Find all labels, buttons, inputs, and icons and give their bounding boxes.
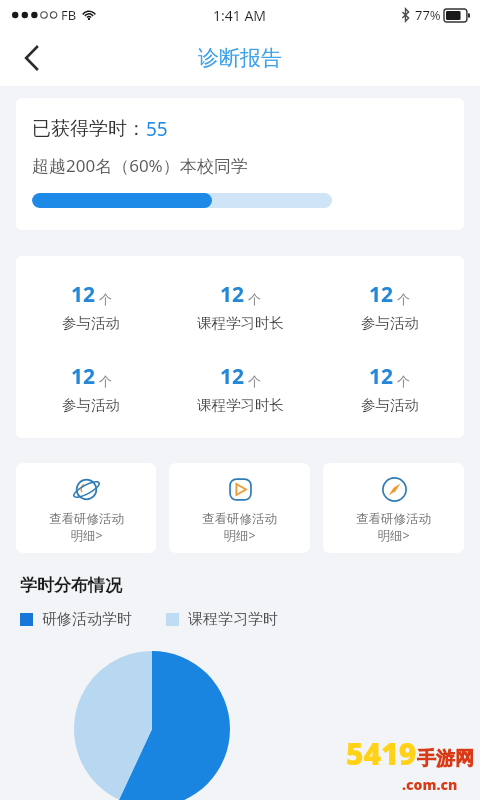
staticText: 查看研修活动 明细> [202,511,277,543]
staticText: 55 [146,116,168,142]
staticText: 5419 [346,733,417,774]
staticText: 12 [71,280,96,309]
other: 课程学习 [226,475,255,504]
staticText: 研修活动学时 [42,610,132,629]
staticText: 查看研修活动 明细> [49,511,124,543]
button[interactable]: 12 [166,362,315,414]
button[interactable]: 课程学习 [169,463,310,553]
staticText: 参与活动 [361,314,419,332]
staticText: 个 [99,373,112,389]
button[interactable]: 12 [16,280,166,332]
button[interactable]: 12 [315,280,464,332]
button[interactable]: 已获得学时： [16,98,464,230]
button[interactable]: 研修活动 [16,463,156,553]
staticText: 12 [369,280,394,309]
staticText: 课程学习时长 [197,314,284,332]
staticText: FB [61,6,77,24]
button[interactable]: 12 [166,280,315,332]
staticText: 参与活动 [62,314,120,332]
button[interactable]: Back [10,36,54,80]
staticText: 个 [397,373,410,389]
staticText: 1:41 AM [213,6,267,25]
staticText: .com.cn [402,775,458,794]
staticText: 手游网 [417,747,474,771]
staticText: 课程学习学时 [188,610,278,629]
staticText: 77% [415,6,441,24]
other: 研修活动 [72,475,101,504]
staticText: 课程学习时长 [197,396,284,414]
staticText: 个 [248,291,261,307]
staticText: 查看研修活动 明细> [356,511,431,543]
staticText: 诊断报告 [198,45,282,71]
staticText: 参与活动 [62,396,120,414]
button[interactable]: 12 [16,362,166,414]
staticText: 超越200名（60%）本校同学 [32,154,248,177]
staticText: 参与活动 [361,396,419,414]
staticText: 学时分布情况 [20,575,122,596]
staticText: 12 [220,362,245,391]
staticText: 个 [397,291,410,307]
other: 研修明细 [380,475,409,504]
button[interactable]: 12 [315,362,464,414]
staticText: 12 [220,280,245,309]
staticText: 12 [71,362,96,391]
button[interactable]: 研修明细 [323,463,464,553]
staticText: 个 [248,373,261,389]
staticText: 已获得学时： [32,117,146,141]
staticText: 12 [369,362,394,391]
staticText: 个 [99,291,112,307]
